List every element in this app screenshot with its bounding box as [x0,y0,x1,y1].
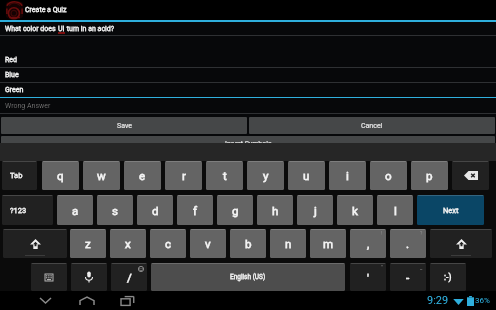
button[interactable]: Blue [0,68,496,83]
button[interactable]: p [411,161,448,190]
staticText: , [367,237,370,250]
button[interactable]: i [329,161,366,190]
button[interactable]: Switch keyboard [31,263,67,291]
button[interactable]: Backspace [452,161,489,190]
button[interactable]: d [137,195,173,225]
staticText: Green [5,86,24,94]
button[interactable]: Space [151,263,345,291]
button[interactable]: Next [417,195,484,225]
staticText: i [346,169,349,182]
button[interactable]: e [124,161,161,190]
staticText: Tab [10,171,23,180]
button[interactable]: Insert Symbols [1,136,495,152]
staticText: ?123 [10,206,27,215]
button[interactable]: / [111,263,147,291]
button[interactable]: Hide keyboard [34,291,56,310]
button[interactable]: x [110,229,146,258]
staticText: h [272,204,279,217]
button[interactable]: Shift [430,229,492,258]
button[interactable]: What color does [0,22,496,36]
button[interactable]: Cancel [249,117,495,134]
button[interactable]: o [370,161,407,190]
staticText: / [127,271,132,284]
button[interactable]: r [165,161,202,190]
staticText: c [165,237,172,250]
button[interactable]: _ [390,263,426,291]
button[interactable]: ? [390,229,426,258]
staticText: n [285,237,292,250]
staticText: b [245,237,252,250]
button[interactable]: Voice input [71,263,107,291]
button[interactable]: " [350,263,386,291]
button[interactable]: z [70,229,106,258]
staticText: q [57,169,64,182]
button[interactable]: l [377,195,413,225]
staticText: Blue [5,71,19,79]
staticText: k [352,204,358,217]
staticText: o [385,169,392,182]
staticText: g [232,204,239,217]
staticText: Insert Symbols [225,140,272,148]
staticText: UI [58,25,65,33]
button[interactable]: k [337,195,373,225]
button[interactable]: s [97,195,133,225]
button[interactable]: Shift [3,229,67,258]
staticText: turn in an acid? [65,25,115,33]
button[interactable]: h [257,195,293,225]
staticText: English (US) [230,273,266,281]
button[interactable]: Recent apps [116,291,138,310]
staticText: ? [420,230,423,236]
button[interactable]: q [42,161,79,190]
staticText: p [426,169,433,182]
staticText: Save [117,122,132,130]
staticText: Create a Quiz [25,6,67,14]
staticText: 36% [475,296,490,305]
button[interactable]: b [230,229,266,258]
button[interactable]: f [177,195,213,225]
button[interactable]: j [297,195,333,225]
button[interactable]: Tab [2,161,37,190]
staticText: w [97,169,106,182]
button[interactable]: y [247,161,284,190]
button[interactable]: m [310,229,346,258]
staticText: e [139,169,146,182]
staticText: s [112,204,118,217]
button[interactable]: g [217,195,253,225]
staticText: :-) [444,272,452,282]
button[interactable]: c [150,229,186,258]
staticText: _ [420,264,423,270]
staticText: f [193,204,197,217]
staticText: Red [5,56,17,64]
button[interactable]: a [57,195,93,225]
button[interactable]: Green [0,83,496,98]
staticText: Wrong Answer [5,102,51,110]
button[interactable]: ?123 [2,195,53,225]
button[interactable]: ! [350,229,386,258]
staticText: " [381,264,383,270]
button[interactable]: Save [1,117,247,134]
button[interactable]: n [270,229,306,258]
button[interactable]: w [83,161,120,190]
staticText: x [125,237,131,250]
staticText: l [394,204,397,217]
staticText: u [303,169,310,182]
staticText: j [314,204,317,217]
button[interactable]: Wrong Answer [0,98,496,114]
staticText: a [72,204,79,217]
button[interactable]: Red [0,53,496,68]
staticText: What color does [5,25,58,33]
button[interactable]: v [190,229,226,258]
staticText: Next [443,206,459,215]
staticText: v [205,237,211,250]
staticText: Cancel [361,122,383,130]
button[interactable]: Emoticons [430,263,466,291]
staticText: . [406,237,410,250]
staticText: t [223,169,227,182]
button[interactable]: u [288,161,325,190]
button[interactable]: Home [76,291,98,310]
staticText: m [323,237,334,250]
staticText: 9:29 [427,294,449,307]
staticText: - [406,271,410,284]
button[interactable]: t [206,161,243,190]
staticText: ' [367,271,370,284]
